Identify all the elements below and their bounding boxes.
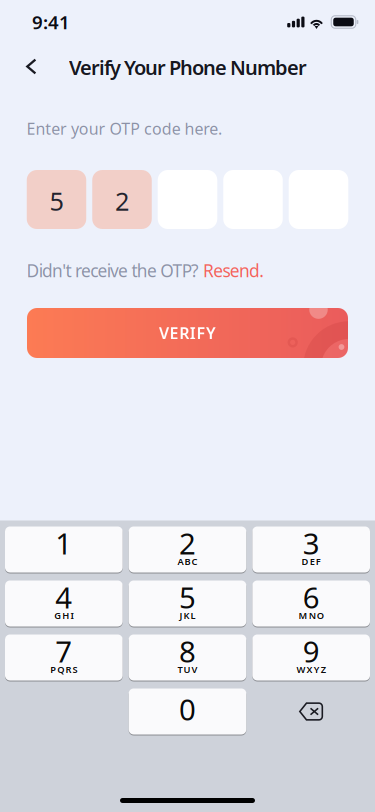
button[interactable]: 8 <box>129 634 246 680</box>
staticText: 9:41 <box>32 10 70 34</box>
button[interactable]: Resend. <box>203 259 264 282</box>
button[interactable]: 5 <box>27 170 86 229</box>
button[interactable]: 4 <box>5 580 123 626</box>
staticText: DEF <box>302 555 321 568</box>
staticText: Verify Your Phone Number <box>69 54 307 81</box>
staticText: 5 <box>179 577 196 616</box>
staticText: PQRS <box>50 663 77 676</box>
staticText: 1 <box>55 523 72 562</box>
staticText: 6 <box>303 577 320 616</box>
button[interactable]: 2 <box>92 170 152 229</box>
button[interactable]: Delete <box>252 688 370 734</box>
staticText: 3 <box>303 523 320 562</box>
button[interactable]: 5 <box>129 580 246 626</box>
staticText: VERIFY <box>159 322 216 344</box>
staticText: 4 <box>55 577 72 616</box>
button[interactable]: 0 <box>129 688 246 734</box>
staticText: 9 <box>303 631 320 670</box>
staticText: 5 <box>49 184 63 218</box>
staticText: GHI <box>54 609 73 622</box>
staticText: Enter your OTP code here. <box>26 118 222 139</box>
button[interactable]: 6 <box>252 580 370 626</box>
button[interactable]: VERIFY <box>27 308 348 358</box>
button[interactable]: Back <box>14 49 48 83</box>
button[interactable]: 3 <box>252 526 370 572</box>
staticText: 7 <box>55 631 72 670</box>
staticText: ABC <box>177 555 198 568</box>
button[interactable]: 7 <box>5 634 123 680</box>
button[interactable]: 1 <box>5 526 123 572</box>
staticText: 8 <box>179 631 196 670</box>
staticText: Didn't receive the OTP? <box>26 259 203 282</box>
staticText: 2 <box>115 184 129 218</box>
staticText: 2 <box>179 523 196 562</box>
staticText: Resend. <box>203 259 264 282</box>
staticText: MNO <box>299 609 324 622</box>
staticText: JKL <box>179 609 196 622</box>
button[interactable]: 2 <box>129 526 246 572</box>
staticText: TUV <box>177 663 198 676</box>
staticText: WXYZ <box>296 663 326 676</box>
button[interactable]: 9 <box>252 634 370 680</box>
staticText: 0 <box>179 689 196 728</box>
